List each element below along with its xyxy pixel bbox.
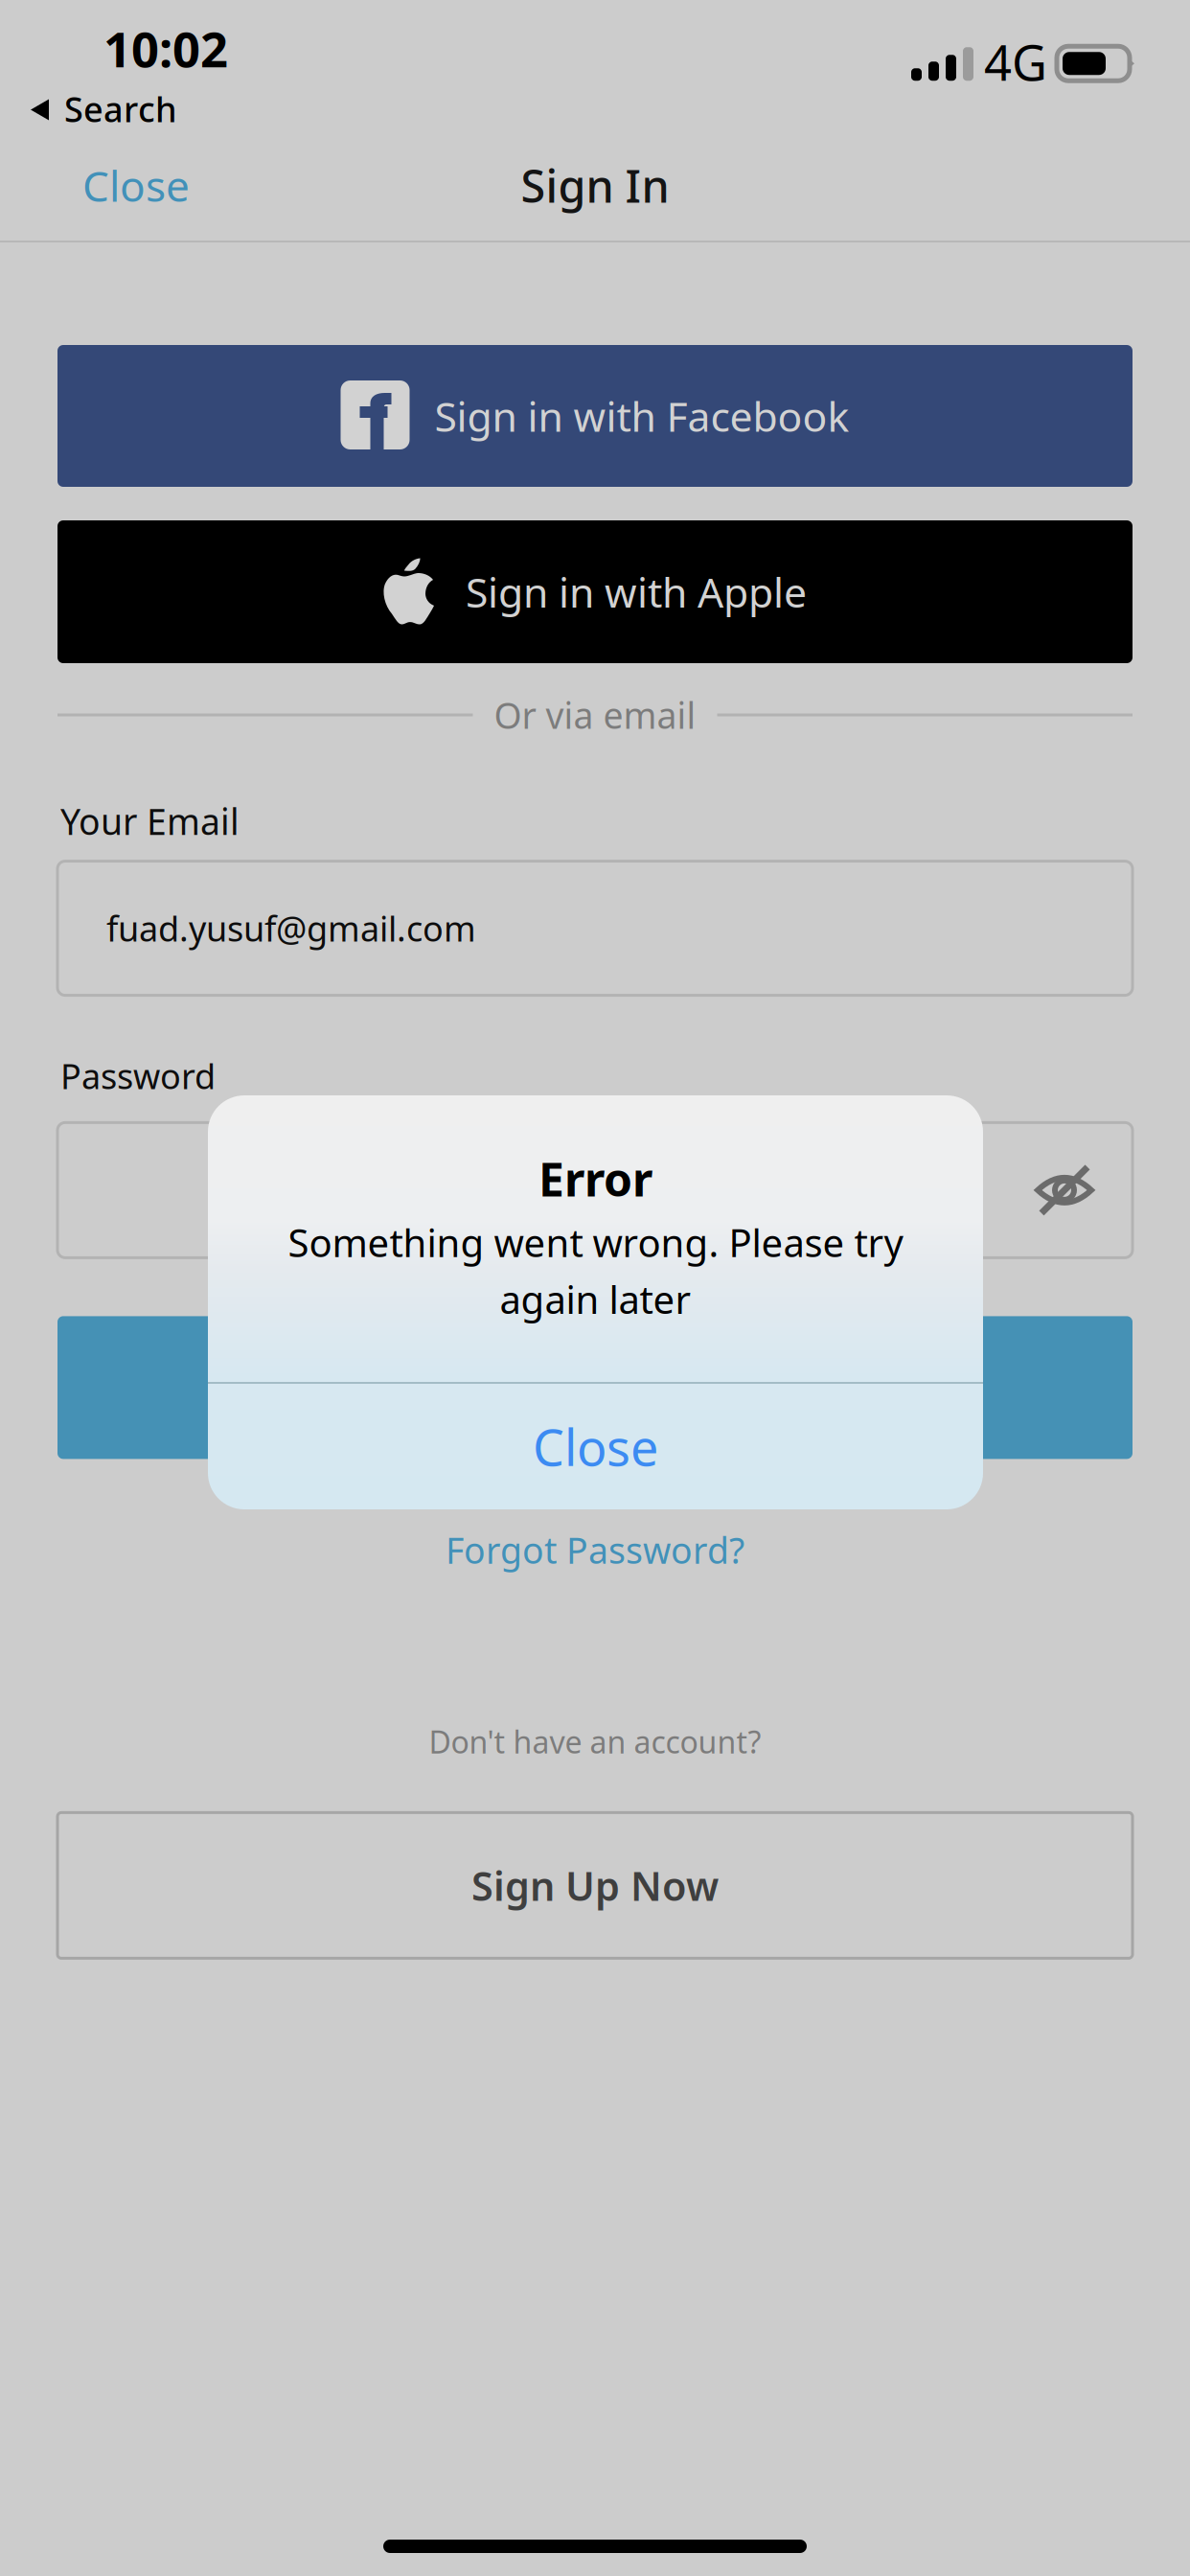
staticText: Close bbox=[82, 157, 190, 213]
button[interactable]: Sign in with Facebook bbox=[57, 345, 1133, 487]
button[interactable]: Forgot Password? bbox=[0, 1526, 1190, 1574]
staticText: Sign In bbox=[521, 156, 669, 215]
staticText: Close bbox=[533, 1414, 658, 1480]
staticText: Sign in with Apple bbox=[466, 565, 807, 619]
staticText: Sign In bbox=[527, 1360, 663, 1415]
staticText: Your Email bbox=[60, 797, 240, 845]
staticText: fuad.yusuf@gmail.com bbox=[106, 905, 476, 951]
staticText: Error bbox=[538, 1148, 652, 1209]
button[interactable]: Sign In bbox=[57, 1316, 1133, 1459]
staticText: Sign in with Facebook bbox=[435, 389, 849, 443]
staticText: 10:02 bbox=[103, 16, 228, 81]
button[interactable]: Sign Up Now bbox=[57, 1813, 1133, 1958]
button[interactable]: Close bbox=[208, 1384, 983, 1509]
staticText: Don't have an account? bbox=[429, 1721, 761, 1762]
button[interactable]: Sign in with Apple bbox=[57, 520, 1133, 663]
button[interactable]: Show password bbox=[1035, 1123, 1133, 1257]
staticText: Forgot Password? bbox=[446, 1526, 744, 1574]
staticText: Search bbox=[64, 86, 177, 132]
staticText: Password bbox=[60, 1053, 216, 1099]
button[interactable]: Close bbox=[61, 138, 211, 233]
staticText: Or via email bbox=[494, 691, 696, 739]
staticText: Something went wrong. Please try bbox=[288, 1217, 903, 1268]
staticText: again later bbox=[500, 1274, 691, 1324]
staticText: 4G bbox=[984, 30, 1047, 94]
staticText: Sign Up Now bbox=[471, 1859, 719, 1912]
